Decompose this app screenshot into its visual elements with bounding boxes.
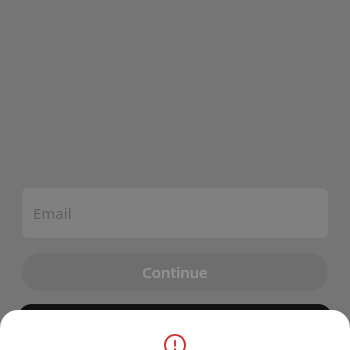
staticText: Email [33, 203, 72, 223]
button[interactable]: Continue [22, 253, 328, 291]
staticText: Continue [142, 262, 208, 282]
other: Error [164, 334, 186, 350]
